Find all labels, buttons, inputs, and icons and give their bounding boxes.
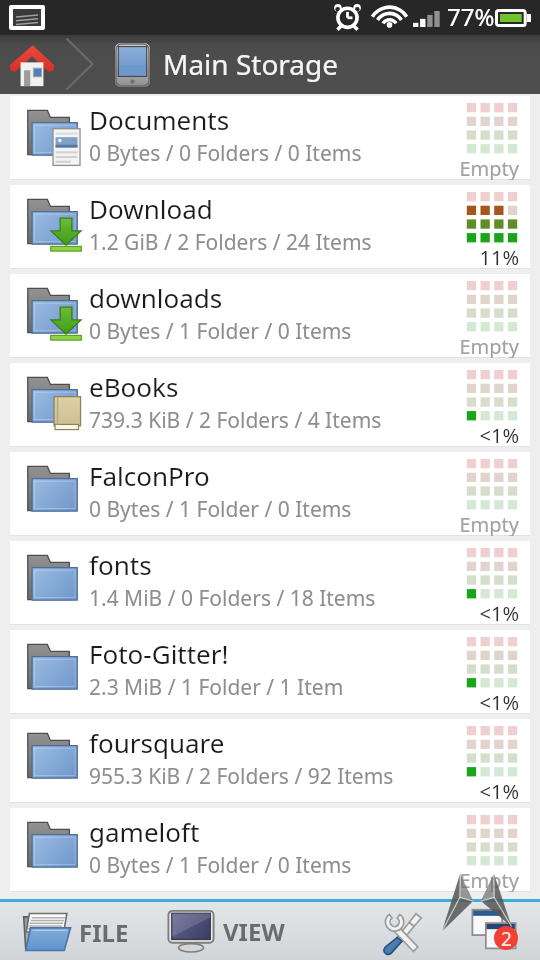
staticText: gameloft <box>89 814 200 849</box>
staticText: 11% <box>479 244 519 269</box>
button[interactable]: downloads <box>10 274 530 358</box>
staticText: <1% <box>479 600 519 625</box>
staticText: Documents <box>89 102 230 137</box>
staticText: FalconPro <box>89 458 210 493</box>
staticText: 0 Bytes / 0 Folders / 0 Items <box>89 139 362 168</box>
staticText: Main Storage <box>163 45 339 83</box>
staticText: <1% <box>479 778 519 803</box>
button[interactable]: FalconPro <box>10 452 530 536</box>
button[interactable]: fonts <box>10 541 530 625</box>
staticText: fonts <box>89 547 152 582</box>
staticText: VIEW <box>223 915 285 948</box>
button[interactable]: foursquare <box>10 719 530 803</box>
staticText: 0 Bytes / 1 Folder / 0 Items <box>89 317 352 346</box>
button[interactable]: Windows <box>462 901 526 959</box>
staticText: 955.3 KiB / 2 Folders / 92 Items <box>89 762 394 791</box>
staticText: 77% <box>447 0 495 33</box>
button[interactable]: Documents <box>10 96 530 180</box>
staticText: Empty <box>459 333 519 358</box>
staticText: 739.3 KiB / 2 Folders / 4 Items <box>89 406 382 435</box>
staticText: Empty <box>459 155 519 180</box>
button[interactable]: gameloft <box>10 808 530 892</box>
staticText: 0 Bytes / 1 Folder / 0 Items <box>89 851 352 880</box>
staticText: <1% <box>479 689 519 714</box>
staticText: 2.3 MiB / 1 Folder / 1 Item <box>89 673 344 702</box>
button[interactable]: VIEW <box>167 902 291 960</box>
button[interactable]: Download <box>10 185 530 269</box>
button[interactable]: eBooks <box>10 363 530 447</box>
staticText: Download <box>89 191 213 226</box>
staticText: foursquare <box>89 725 225 760</box>
staticText: Foto-Gitter! <box>89 636 229 671</box>
staticText: eBooks <box>89 369 179 404</box>
staticText: Empty <box>459 867 519 892</box>
staticText: 2 <box>501 926 512 950</box>
button[interactable]: Home <box>2 35 62 94</box>
staticText: 1.4 MiB / 0 Folders / 18 Items <box>89 584 376 613</box>
staticText: <1% <box>479 422 519 447</box>
staticText: 1.2 GiB / 2 Folders / 24 Items <box>89 228 372 257</box>
staticText: FILE <box>79 916 129 949</box>
button[interactable]: Main Storage <box>110 35 339 94</box>
staticText: downloads <box>89 280 223 315</box>
staticText: Empty <box>459 511 519 536</box>
button[interactable]: FILE <box>19 903 145 960</box>
button[interactable]: Foto-Gitter! <box>10 630 530 714</box>
button[interactable]: Tools <box>372 901 430 959</box>
staticText: 0 Bytes / 1 Folder / 0 Items <box>89 495 352 524</box>
